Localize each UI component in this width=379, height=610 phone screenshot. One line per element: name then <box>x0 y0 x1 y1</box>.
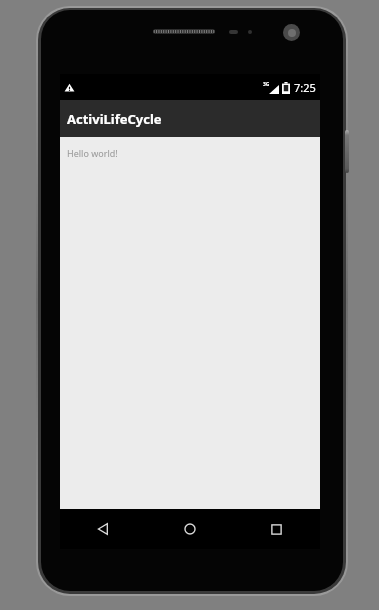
button[interactable]: ActiviLifeCycle <box>60 100 320 137</box>
staticText: Hello world! <box>67 147 118 159</box>
staticText: ActiviLifeCycle <box>67 110 162 128</box>
button[interactable]: Home <box>146 509 233 549</box>
button[interactable]: Recent apps <box>233 509 320 549</box>
button[interactable]: Back <box>60 509 146 549</box>
button[interactable]: Power <box>345 130 349 173</box>
staticText: 3G <box>263 81 270 88</box>
staticText: 7:25 <box>294 80 316 95</box>
